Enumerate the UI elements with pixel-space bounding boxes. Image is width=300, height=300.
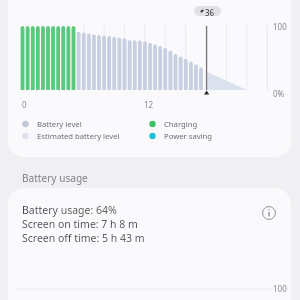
staticText: 0% [273,88,285,99]
staticText: 36 [205,7,215,18]
staticText: Estimated battery level [37,131,120,141]
staticText: 0 [22,99,27,110]
staticText: 12 [144,99,154,110]
button[interactable]: Information [256,200,282,226]
staticText: Screen off time: 5 h 43 m [22,231,145,245]
button[interactable] [8,0,291,157]
staticText: Screen on time: 7 h 8 m [22,217,138,231]
staticText: 100 [273,21,287,32]
staticText: Charging [164,119,198,129]
staticText: Power saving [164,131,213,141]
button[interactable]: Battery 36 percent, charging [194,6,221,16]
staticText: Battery usage: 64% [22,203,117,217]
staticText: 100 [273,283,287,294]
staticText: Battery usage [22,171,88,185]
staticText: Battery level [37,119,82,129]
